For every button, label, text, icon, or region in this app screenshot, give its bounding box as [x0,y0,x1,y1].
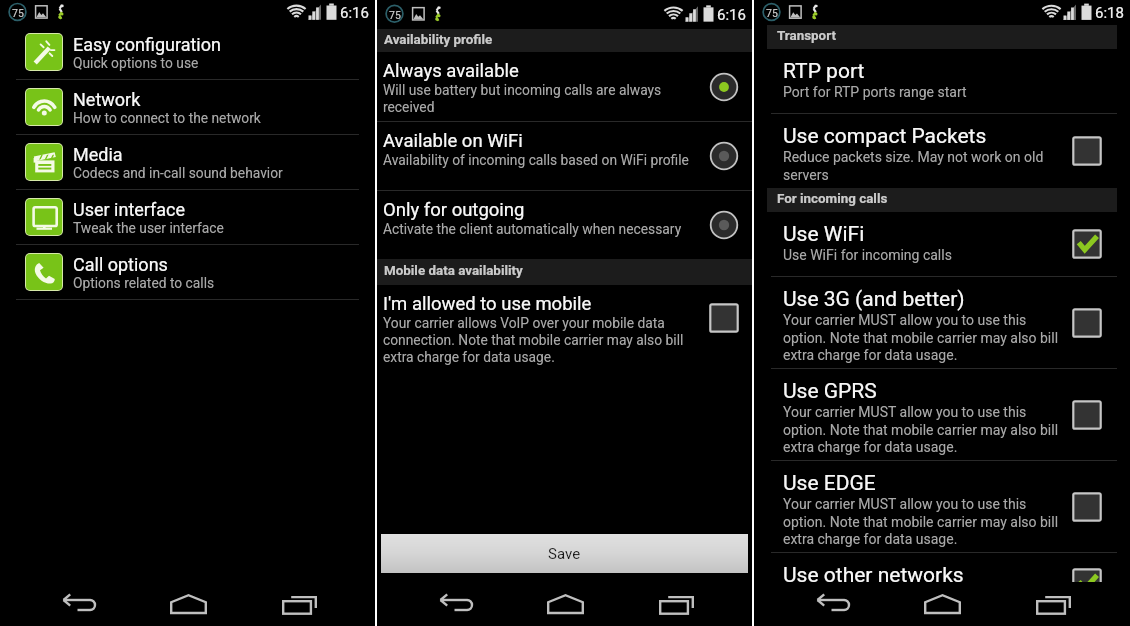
staticText: Easy configuration [73,34,221,55]
button[interactable]: Use 3G (and better) [754,277,1130,368]
staticText: 75 [389,9,401,21]
staticText: Available on WiFi [383,130,523,152]
staticText: 75 [12,7,24,19]
button[interactable]: Back [429,582,481,626]
staticText: Use 3G (and better) [783,287,965,312]
staticText: 75 [766,7,778,19]
staticText: Availability of incoming calls based on … [383,152,689,168]
button[interactable]: Media [0,135,375,189]
staticText: Availability profile [384,32,493,48]
staticText: Always available [383,60,519,82]
button[interactable]: User interface [0,190,375,244]
staticText: Use EDGE [783,471,876,496]
staticText: Activate the client automatically when n… [383,221,682,237]
button[interactable]: Always available [377,52,752,121]
staticText: Your carrier MUST allow you to use this … [783,496,1060,547]
staticText: Media [73,144,123,165]
staticText: Use WiFi for incoming calls [783,247,952,263]
staticText: I'm allowed to use mobile [383,293,592,315]
staticText: Only for outgoing [383,199,525,221]
staticText: Mobile data availability [384,263,523,279]
button[interactable]: Home [162,582,214,626]
button[interactable]: Call options [0,245,375,299]
staticText: 6:18 [1095,4,1124,22]
button[interactable]: Recent apps [273,582,325,626]
staticText: Reduce packets size. May not work on old… [783,149,1060,183]
button[interactable]: Use GPRS [754,369,1130,460]
button[interactable]: Back [806,582,858,626]
staticText: User interface [73,199,186,220]
button[interactable]: Easy configuration [0,25,375,79]
staticText: Will use battery but incoming calls are … [383,82,698,115]
staticText: Quick options to use [73,55,199,71]
button[interactable]: Use other networks [754,553,1130,582]
staticText: Use compact Packets [783,124,987,149]
staticText: Use other networks [783,563,964,582]
button[interactable]: Only for outgoing [377,191,752,259]
button[interactable]: Recent apps [650,582,702,626]
staticText: Use GPRS [783,379,877,404]
staticText: How to connect to the network [73,110,261,126]
button[interactable]: Available on WiFi [377,122,752,190]
button[interactable]: Save [381,534,748,573]
button[interactable]: Back [52,582,104,626]
staticText: Codecs and in-call sound behavior [73,165,283,181]
staticText: Network [73,89,141,110]
button[interactable]: I'm allowed to use mobile [377,285,752,371]
staticText: Use WiFi [783,222,865,247]
button[interactable]: Home [916,582,968,626]
button[interactable]: Use compact Packets [754,114,1130,188]
staticText: RTP port [783,59,865,84]
button[interactable]: Use EDGE [754,461,1130,552]
staticText: Options related to calls [73,275,215,291]
staticText: Transport [777,28,836,44]
button[interactable]: Use WiFi [754,212,1130,276]
staticText: 6:16 [717,6,746,24]
staticText: Your carrier MUST allow you to use this … [783,404,1060,455]
button[interactable]: Network [0,80,375,134]
button[interactable]: RTP port [754,49,1130,113]
button[interactable]: Recent apps [1027,582,1079,626]
staticText: Your carrier MUST allow you to use this … [783,312,1060,363]
staticText: For incoming calls [777,191,888,207]
button[interactable]: Home [539,582,591,626]
staticText: Save [548,545,581,563]
staticText: Tweak the user interface [73,220,224,236]
staticText: Call options [73,254,168,275]
staticText: Your carrier allows VoIP over your mobil… [383,315,698,365]
staticText: Port for RTP ports range start [783,84,967,100]
staticText: 6:16 [340,4,369,22]
